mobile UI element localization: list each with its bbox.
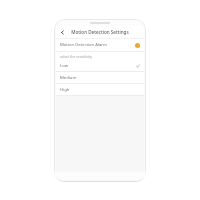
staticText: Motion Detection Settings xyxy=(71,29,129,35)
button[interactable]: Low xyxy=(56,60,144,71)
staticText: select the sensitivity xyxy=(60,54,92,59)
staticText: High xyxy=(60,87,70,93)
button[interactable]: Motion Detection Alarm xyxy=(56,39,144,51)
staticText: Medium xyxy=(60,75,77,81)
staticText: Low xyxy=(60,63,68,69)
button[interactable]: Back xyxy=(56,26,68,38)
button[interactable]: High xyxy=(56,84,144,95)
button[interactable]: Medium xyxy=(56,72,144,83)
staticText: Motion Detection Alarm xyxy=(60,42,107,48)
